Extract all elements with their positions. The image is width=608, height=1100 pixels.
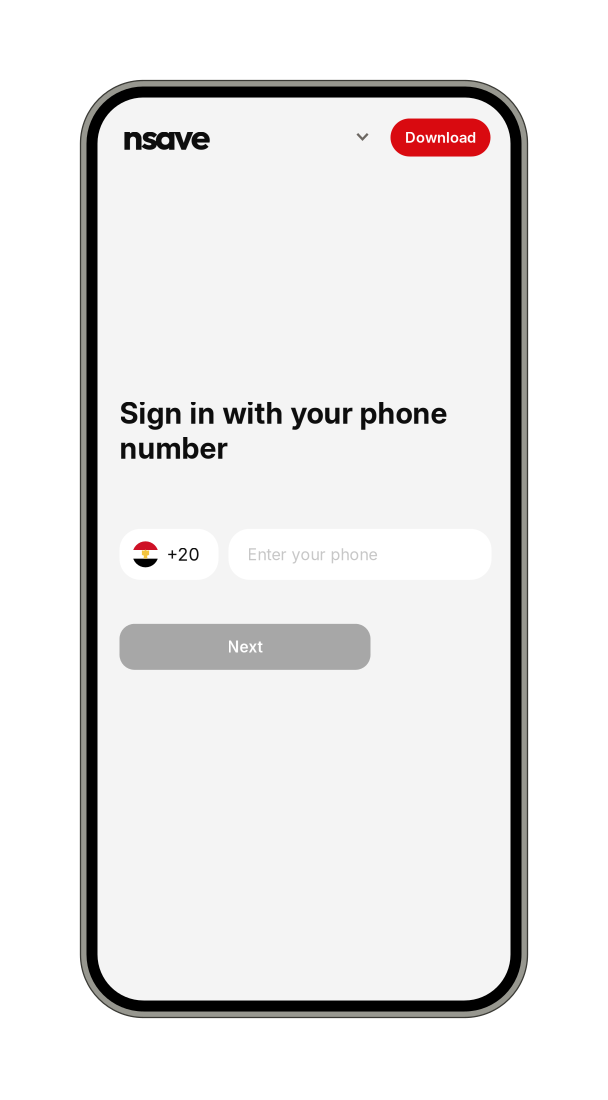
button[interactable]: Enter your phone: [228, 529, 491, 580]
button[interactable]: Next: [119, 624, 370, 670]
staticText: Next: [227, 638, 262, 656]
button[interactable]: Choose country: [343, 117, 381, 155]
staticText: +20: [166, 544, 199, 565]
button[interactable]: Download: [390, 117, 490, 155]
staticText: nsave: [122, 114, 211, 159]
button[interactable]: +20: [119, 529, 218, 580]
staticText: Download: [405, 129, 476, 146]
staticText: Enter your phone: [247, 545, 377, 564]
staticText: Sign in with your phone number: [119, 395, 447, 466]
